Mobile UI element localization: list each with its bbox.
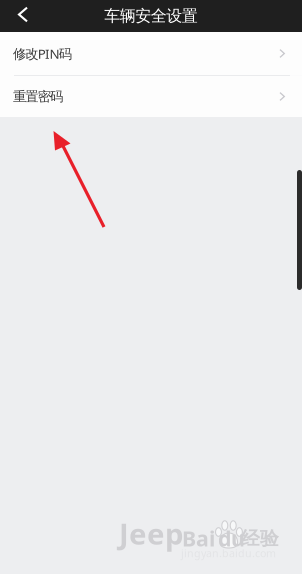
- button[interactable]: Back: [0, 1, 46, 31]
- staticText: jingyan.baidu.com: [181, 546, 276, 560]
- staticText: 重置密码: [13, 88, 63, 105]
- staticText: du: [218, 524, 245, 552]
- staticText: 修改PIN码: [13, 45, 72, 62]
- button[interactable]: 修改PIN码: [0, 32, 302, 75]
- staticText: Jeep: [119, 514, 184, 553]
- button[interactable]: 重置密码: [0, 76, 302, 117]
- staticText: 车辆安全设置: [104, 6, 198, 26]
- staticText: 经验: [241, 527, 279, 550]
- staticText: Bai: [182, 524, 215, 552]
